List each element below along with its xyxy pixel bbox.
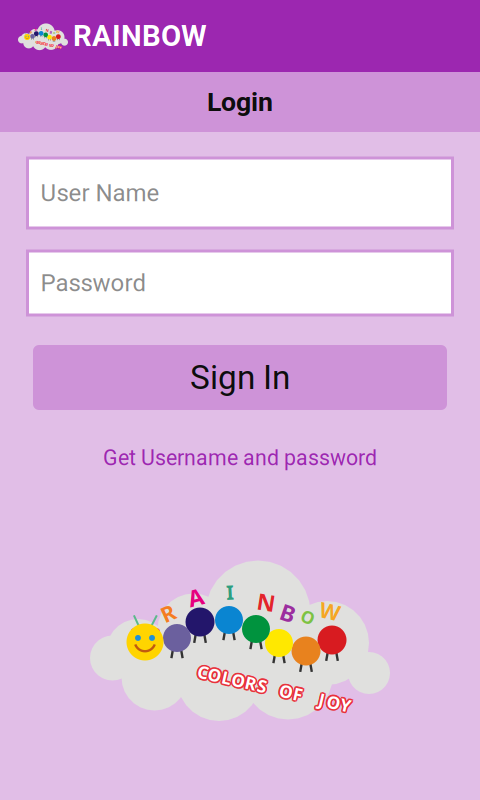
staticText: Y xyxy=(340,693,351,717)
staticText: O xyxy=(326,689,340,713)
staticText: S xyxy=(256,675,266,699)
button[interactable]: User Name xyxy=(27,158,452,228)
staticText: R xyxy=(48,71,59,95)
staticText: L xyxy=(24,67,34,90)
staticText: C xyxy=(197,660,208,684)
staticText: L xyxy=(25,66,35,89)
staticText: O xyxy=(281,679,295,703)
staticText: C xyxy=(196,660,207,684)
staticText: O xyxy=(11,64,25,88)
staticText: L xyxy=(221,667,231,690)
staticText: L xyxy=(26,67,36,90)
staticText: R xyxy=(244,672,255,696)
button[interactable]: Sign In xyxy=(33,345,447,410)
staticText: O xyxy=(327,689,341,712)
staticText: O xyxy=(208,664,222,688)
staticText: R xyxy=(47,70,58,94)
staticText: J xyxy=(320,688,326,711)
staticText: J xyxy=(319,686,325,710)
staticText: O xyxy=(207,662,221,685)
staticText: J xyxy=(318,689,324,712)
staticText: R xyxy=(245,671,256,695)
staticText: O xyxy=(11,61,25,85)
staticText: O xyxy=(10,64,24,88)
staticText: J xyxy=(318,686,324,710)
staticText: R xyxy=(161,598,175,628)
staticText: O xyxy=(279,681,293,705)
staticText: L xyxy=(25,64,35,88)
staticText: C xyxy=(0,62,11,85)
staticText: O xyxy=(280,681,294,704)
button[interactable]: Get Username and password xyxy=(90,443,390,473)
staticText: L xyxy=(220,666,230,689)
staticText: O xyxy=(232,670,246,694)
staticText: C xyxy=(196,661,207,685)
staticText: L xyxy=(223,666,233,689)
staticText: R xyxy=(48,70,59,93)
staticText: O xyxy=(36,68,50,92)
staticText: Y xyxy=(338,693,349,717)
staticText: O xyxy=(232,668,246,692)
staticText: O xyxy=(9,63,23,86)
staticText: S xyxy=(259,675,269,699)
staticText: O xyxy=(278,681,292,704)
staticText: C xyxy=(197,662,208,685)
staticText: C xyxy=(0,59,11,82)
staticText: Sign In xyxy=(190,358,290,397)
button[interactable]: Password xyxy=(27,251,452,315)
staticText: J xyxy=(317,688,323,711)
staticText: B xyxy=(280,598,295,628)
staticText: O xyxy=(12,64,26,88)
staticText: C xyxy=(199,660,210,684)
staticText: I xyxy=(226,578,234,606)
staticText: C xyxy=(0,60,11,84)
staticText: L xyxy=(25,67,35,91)
staticText: W xyxy=(122,0,143,26)
staticText: O xyxy=(209,663,223,686)
staticText: O xyxy=(280,678,294,702)
staticText: C xyxy=(2,60,13,84)
staticText: R xyxy=(246,672,257,696)
staticText: S xyxy=(257,672,267,696)
staticText: O xyxy=(327,690,341,714)
staticText: O xyxy=(230,667,244,691)
